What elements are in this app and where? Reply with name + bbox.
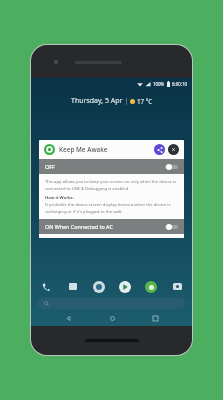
staticText: This app allows you to keep your screen … xyxy=(45,179,178,191)
button[interactable]: Search xyxy=(38,298,185,309)
button[interactable]: Messages xyxy=(66,280,79,293)
button[interactable]: OFF xyxy=(39,159,184,174)
button[interactable]: Browser xyxy=(93,281,105,293)
button[interactable]: Close xyxy=(168,144,179,155)
staticText: ON When Connected to AC xyxy=(45,223,113,230)
staticText: OFF xyxy=(45,163,55,170)
button[interactable]: Camera xyxy=(171,280,184,293)
staticText: Thursday, 5 Apr xyxy=(71,96,123,106)
button[interactable]: Share xyxy=(154,144,165,155)
button[interactable]: Back xyxy=(62,312,74,324)
staticText: Keep Me Awake xyxy=(59,145,108,154)
button[interactable]: Keep Me Awake xyxy=(145,281,157,293)
button[interactable]: Phone xyxy=(39,280,52,293)
button[interactable]: Home xyxy=(106,312,118,324)
staticText: How it Works: xyxy=(45,195,74,201)
staticText: 100% xyxy=(153,81,165,87)
staticText: It prohibits the device screen display t… xyxy=(45,202,178,214)
staticText: 17 °C xyxy=(137,97,153,105)
button[interactable]: Play Store xyxy=(119,281,131,293)
button[interactable]: ON When Connected to AC xyxy=(39,219,184,234)
button[interactable]: Recents xyxy=(149,312,161,324)
staticText: 6:00:10 xyxy=(172,81,187,87)
